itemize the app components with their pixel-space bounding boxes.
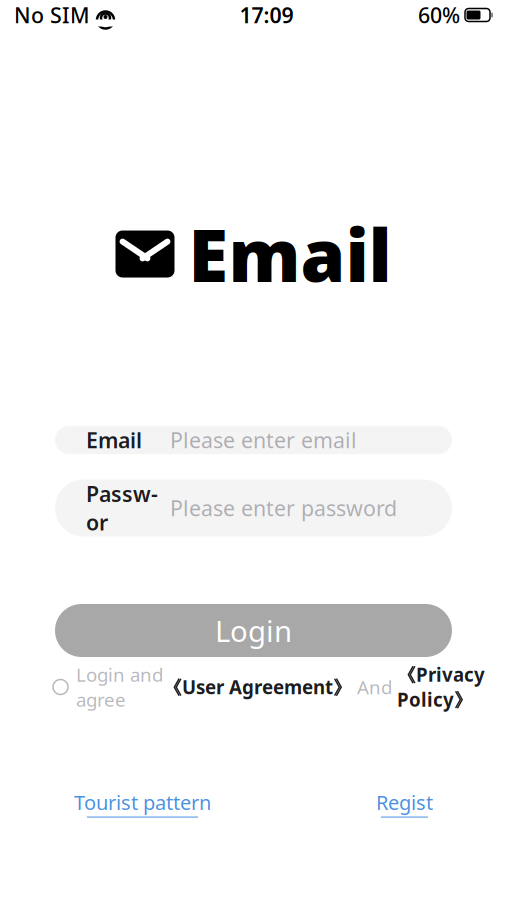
- button[interactable]: Agree to terms: [53, 679, 76, 694]
- staticText: Login and agree: [76, 662, 163, 712]
- staticText: Please enter password: [170, 494, 397, 522]
- staticText: Passwor: [86, 480, 158, 536]
- button[interactable]: Tourist pattern: [74, 789, 211, 818]
- staticText: Email: [86, 426, 142, 454]
- button[interactable]: Login: [55, 604, 452, 657]
- button[interactable]: 《Privacy Policy》: [397, 662, 485, 712]
- button[interactable]: Regist: [376, 789, 433, 818]
- staticText: 17:09: [239, 1, 293, 29]
- staticText: 《Privacy Policy》: [397, 662, 485, 712]
- button[interactable]: 《User Agreement》: [163, 675, 352, 699]
- staticText: Please enter email: [170, 426, 357, 454]
- staticText: Login: [215, 611, 292, 650]
- staticText: 60%: [418, 1, 460, 29]
- staticText: 《User Agreement》: [163, 675, 352, 699]
- staticText: Email: [188, 206, 391, 302]
- staticText: Tourist pattern: [74, 789, 211, 816]
- staticText: And: [352, 675, 397, 699]
- staticText: No SIM: [14, 1, 90, 29]
- staticText: Regist: [376, 789, 433, 816]
